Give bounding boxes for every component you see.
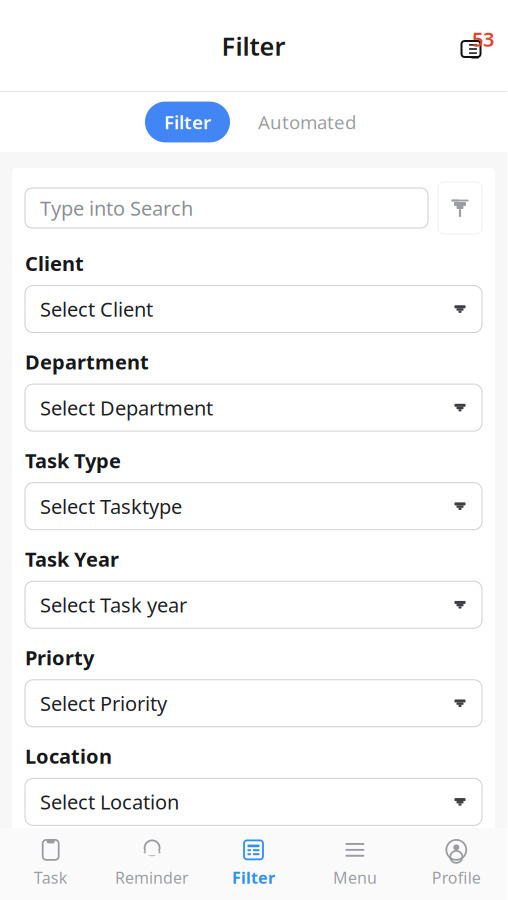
staticText: Filter — [232, 867, 275, 888]
button[interactable]: Filter — [203, 830, 304, 898]
staticText: Select Task year — [40, 591, 187, 618]
staticText: Profile — [432, 867, 481, 888]
button[interactable]: Reminder — [101, 830, 203, 898]
button[interactable]: Messages, 53 unread — [447, 24, 499, 68]
staticText: Client — [25, 250, 84, 277]
button[interactable]: Advanced filter — [438, 182, 482, 234]
staticText: Select Tasktype — [40, 493, 182, 519]
staticText: Reminder — [115, 867, 189, 888]
staticText: 53 — [472, 26, 494, 52]
staticText: Status — [25, 841, 89, 868]
staticText: Automated — [258, 110, 356, 134]
staticText: Priorty — [25, 644, 94, 671]
button[interactable]: Select Client — [25, 286, 482, 333]
button[interactable]: Type into Search — [25, 188, 428, 228]
staticText: Filter — [164, 110, 211, 134]
button[interactable]: Filter — [145, 102, 230, 142]
staticText: Type into Search — [40, 195, 193, 221]
staticText: Task Type — [25, 447, 121, 474]
staticText: Department — [25, 349, 149, 375]
button[interactable]: Task — [0, 830, 101, 898]
button[interactable]: Automated — [252, 102, 362, 142]
button[interactable]: Profile — [406, 830, 507, 898]
staticText: Location — [25, 743, 112, 769]
button[interactable]: Select Status — [25, 877, 482, 900]
button[interactable]: Select Priority — [25, 680, 482, 727]
staticText: Select Department — [40, 394, 213, 421]
button[interactable]: Select Department — [25, 384, 482, 431]
staticText: Task Year — [25, 546, 119, 572]
staticText: Select Client — [40, 296, 153, 322]
staticText: Select Location — [40, 789, 179, 815]
staticText: Task — [34, 867, 68, 888]
staticText: Filter — [221, 29, 285, 63]
staticText: Menu — [333, 867, 377, 888]
staticText: Select Priority — [40, 690, 167, 717]
button[interactable]: Select Task year — [25, 581, 482, 628]
button[interactable]: Select Tasktype — [25, 483, 482, 530]
button[interactable]: Select Location — [25, 778, 482, 825]
button[interactable]: Menu — [304, 830, 406, 898]
